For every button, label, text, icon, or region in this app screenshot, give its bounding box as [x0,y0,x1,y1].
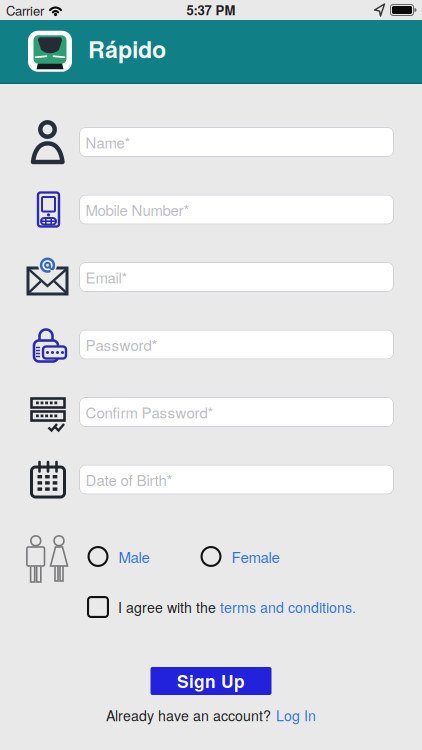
button[interactable]: Mobile Number* [79,194,394,224]
button[interactable]: terms and conditions. [220,597,356,617]
staticText: Password* [85,334,157,355]
staticText: 5:37 PM [186,1,235,19]
button[interactable]: Log In [276,705,316,725]
button[interactable]: Sign Up [150,667,271,695]
staticText: Carrier [6,1,44,19]
staticText: Female [231,546,279,567]
staticText: Sign Up [177,669,245,693]
staticText: Already have an account? [106,705,271,725]
staticText: Rápido [88,32,166,65]
staticText: Mobile Number* [85,199,189,220]
button[interactable]: Name* [79,127,394,157]
button[interactable]: Email* [79,262,394,292]
button[interactable]: Confirm Password* [79,397,394,427]
staticText: terms and conditions. [220,597,356,617]
staticText: Name* [85,131,130,153]
staticText: I agree with the [118,597,220,617]
staticText: Log In [276,705,316,725]
button[interactable]: Date of Birth* [79,464,394,494]
button[interactable]: Male [87,546,149,567]
staticText: Male [118,546,149,567]
staticText: Email* [85,266,127,288]
button[interactable]: Agree to terms [87,596,109,618]
button[interactable]: Password* [79,329,394,359]
button[interactable]: Female [200,546,279,567]
staticText: Date of Birth* [85,469,172,490]
staticText: Confirm Password* [85,401,213,423]
